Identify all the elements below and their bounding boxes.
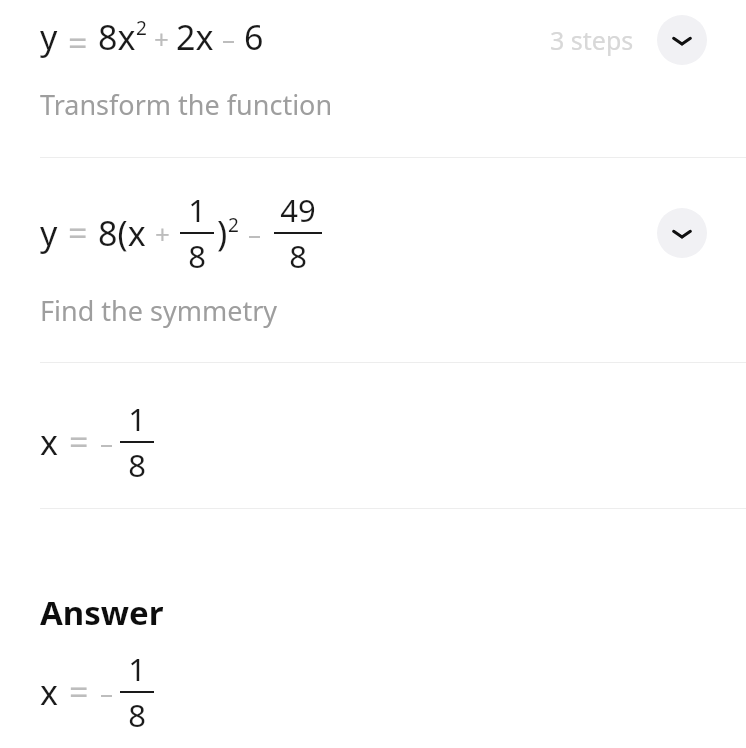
staticText: Transform the function [40,86,333,123]
staticText: Find the symmetry [40,292,278,329]
staticText: = [68,210,88,256]
staticText: + [155,216,170,251]
staticText: = [68,20,88,66]
staticText: ) [217,210,228,256]
button[interactable]: y [0,178,746,288]
staticText: 3 steps [550,23,634,57]
staticText: 2 [136,15,147,41]
button[interactable]: Expand step 1 [657,15,707,65]
staticText: = [69,419,89,465]
staticText: – [100,425,114,460]
staticText: Answer [40,590,164,635]
button[interactable]: Expand step 2 [657,208,707,258]
staticText: 2 [228,212,239,238]
button[interactable]: y [0,0,746,80]
staticText: x [40,419,58,465]
staticText: – [100,675,114,710]
staticText: 49 [280,189,316,231]
staticText: y [40,210,58,256]
staticText: y [40,14,58,60]
staticText: 1 [128,648,146,690]
staticText: 8x [98,14,136,60]
staticText: = [69,669,89,715]
staticText: – [248,216,262,251]
staticText: 1 [188,189,206,231]
staticText: 1 [128,398,146,440]
staticText: 8 [289,235,307,277]
staticText: 6 [244,14,264,60]
staticText: x [40,669,58,715]
staticText: 2x [176,14,214,60]
staticText: 8 [188,235,206,277]
staticText: + [154,21,169,56]
staticText: 8 [128,694,146,736]
staticText: – [222,21,236,56]
staticText: 8 [128,444,146,486]
staticText: 8(x [98,210,146,256]
